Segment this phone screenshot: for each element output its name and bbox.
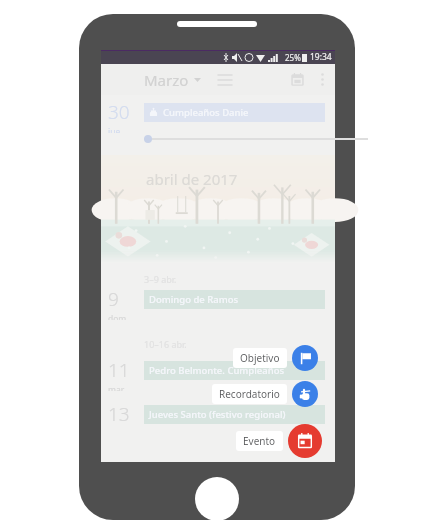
staticText: dom. [108, 313, 129, 320]
staticText: Cumpleaños Danie [163, 106, 249, 119]
button[interactable]: 13 [101, 401, 335, 435]
button[interactable]: 9 [101, 286, 335, 320]
staticText: Pedro Belmonte. Cumpleaños [149, 364, 285, 377]
staticText: 3–9 abr. [144, 273, 177, 285]
button[interactable]: Marzo [144, 64, 201, 95]
staticText: 30 [108, 99, 130, 125]
button[interactable]: Recordatorio [212, 384, 287, 404]
staticText: Marzo [144, 70, 189, 90]
staticText: jue. [108, 126, 123, 133]
staticText: mar. [108, 384, 126, 391]
staticText: Jueves Santo (festivo regional) [149, 408, 286, 421]
staticText: 19:34 [310, 51, 332, 63]
button[interactable]: Recordatorio [292, 381, 318, 407]
button[interactable]: Go to today [284, 64, 310, 95]
staticText: 9 [108, 286, 119, 312]
staticText: 10–16 abr. [144, 338, 187, 350]
staticText: abril de 2017 [146, 169, 238, 189]
staticText: Recordatorio [219, 387, 280, 401]
button[interactable]: 30 [101, 99, 335, 133]
button[interactable]: Objetivo [292, 345, 318, 371]
button[interactable]: Evento [236, 431, 283, 451]
button[interactable]: Open navigation drawer [108, 64, 342, 95]
staticText: 25% [285, 52, 301, 63]
button[interactable]: 11 [101, 357, 335, 391]
staticText: Domingo de Ramos [149, 293, 239, 306]
staticText: Evento [243, 434, 276, 448]
staticText: 13 [108, 401, 130, 427]
button[interactable]: Evento [288, 424, 322, 458]
staticText: Objetivo [240, 351, 280, 365]
button[interactable]: Objetivo [233, 348, 287, 368]
staticText: 11 [108, 357, 130, 383]
